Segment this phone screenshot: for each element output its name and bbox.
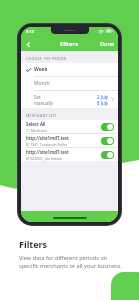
staticText: Filters [19,238,48,250]
button[interactable]: Toggle merchant [101,137,114,145]
staticText: 8 July [97,100,109,106]
button[interactable]: Back [21,37,35,51]
button[interactable]: Select All [21,120,118,134]
staticText: Week [34,66,48,73]
button[interactable]: http://site1mdT.test [21,148,118,161]
button[interactable]: Done [96,37,118,50]
staticText: CHOOSE THE PERIOD [26,56,67,61]
button[interactable]: Toggle merchant [101,151,114,159]
button[interactable]: http://site1mdT.test [21,134,118,148]
button[interactable]: Month [21,77,118,91]
staticText: 2 July [97,94,109,100]
staticText: manually [34,100,53,106]
staticText: Filters [60,40,79,48]
staticText: ID 7341, Constantin Stefan [26,142,68,146]
staticText: 11 Merchants [26,128,48,132]
staticText: Select All [26,121,46,127]
staticText: MERCHANT LIST [26,113,58,118]
staticText: Month [34,80,50,87]
staticText: http://site1mdT.test [26,149,69,155]
button[interactable]: Set [21,91,118,108]
staticText: View data for different periods on speci… [19,254,122,270]
staticText: ID 8430/01, site indicati [26,156,63,160]
staticText: 9:18 [26,29,34,34]
staticText: http://site1mdT.test [26,135,69,141]
staticText: Set [34,94,41,100]
staticText: Done [100,40,114,47]
button[interactable]: Week [21,63,118,77]
button[interactable]: Toggle merchant [101,123,114,131]
